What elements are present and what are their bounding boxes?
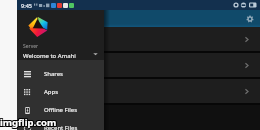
- staticText: imgflip.com: [0, 116, 57, 129]
- staticText: Apps: [44, 88, 59, 96]
- button[interactable]: Recent Files: [17, 119, 104, 130]
- staticText: Shares: [44, 70, 63, 78]
- button[interactable]: [17, 79, 260, 103]
- staticText: imgflip.com: [0, 115, 56, 128]
- button[interactable]: [17, 27, 260, 51]
- button[interactable]: Settings: [243, 12, 257, 26]
- staticText: imgflip.com: [0, 116, 56, 129]
- staticText: imgflip.com: [1, 116, 58, 129]
- button[interactable]: [17, 53, 260, 77]
- staticText: Server: [23, 43, 39, 50]
- button[interactable]: Shares: [17, 65, 104, 83]
- staticText: 9:45: [21, 2, 32, 9]
- staticText: Offline Files: [44, 106, 78, 114]
- staticText: imgflip.com: [1, 117, 58, 130]
- button[interactable]: Offline Files: [17, 101, 104, 119]
- staticText: imgflip.com: [0, 117, 57, 130]
- staticText: imgflip.com: [0, 115, 57, 128]
- staticText: imgflip.com: [0, 117, 56, 130]
- staticText: Welcome to Amahi: [23, 52, 76, 60]
- staticText: imgflip.com: [1, 115, 58, 128]
- button[interactable]: Apps: [17, 83, 104, 101]
- staticText: Recent Files: [44, 124, 78, 130]
